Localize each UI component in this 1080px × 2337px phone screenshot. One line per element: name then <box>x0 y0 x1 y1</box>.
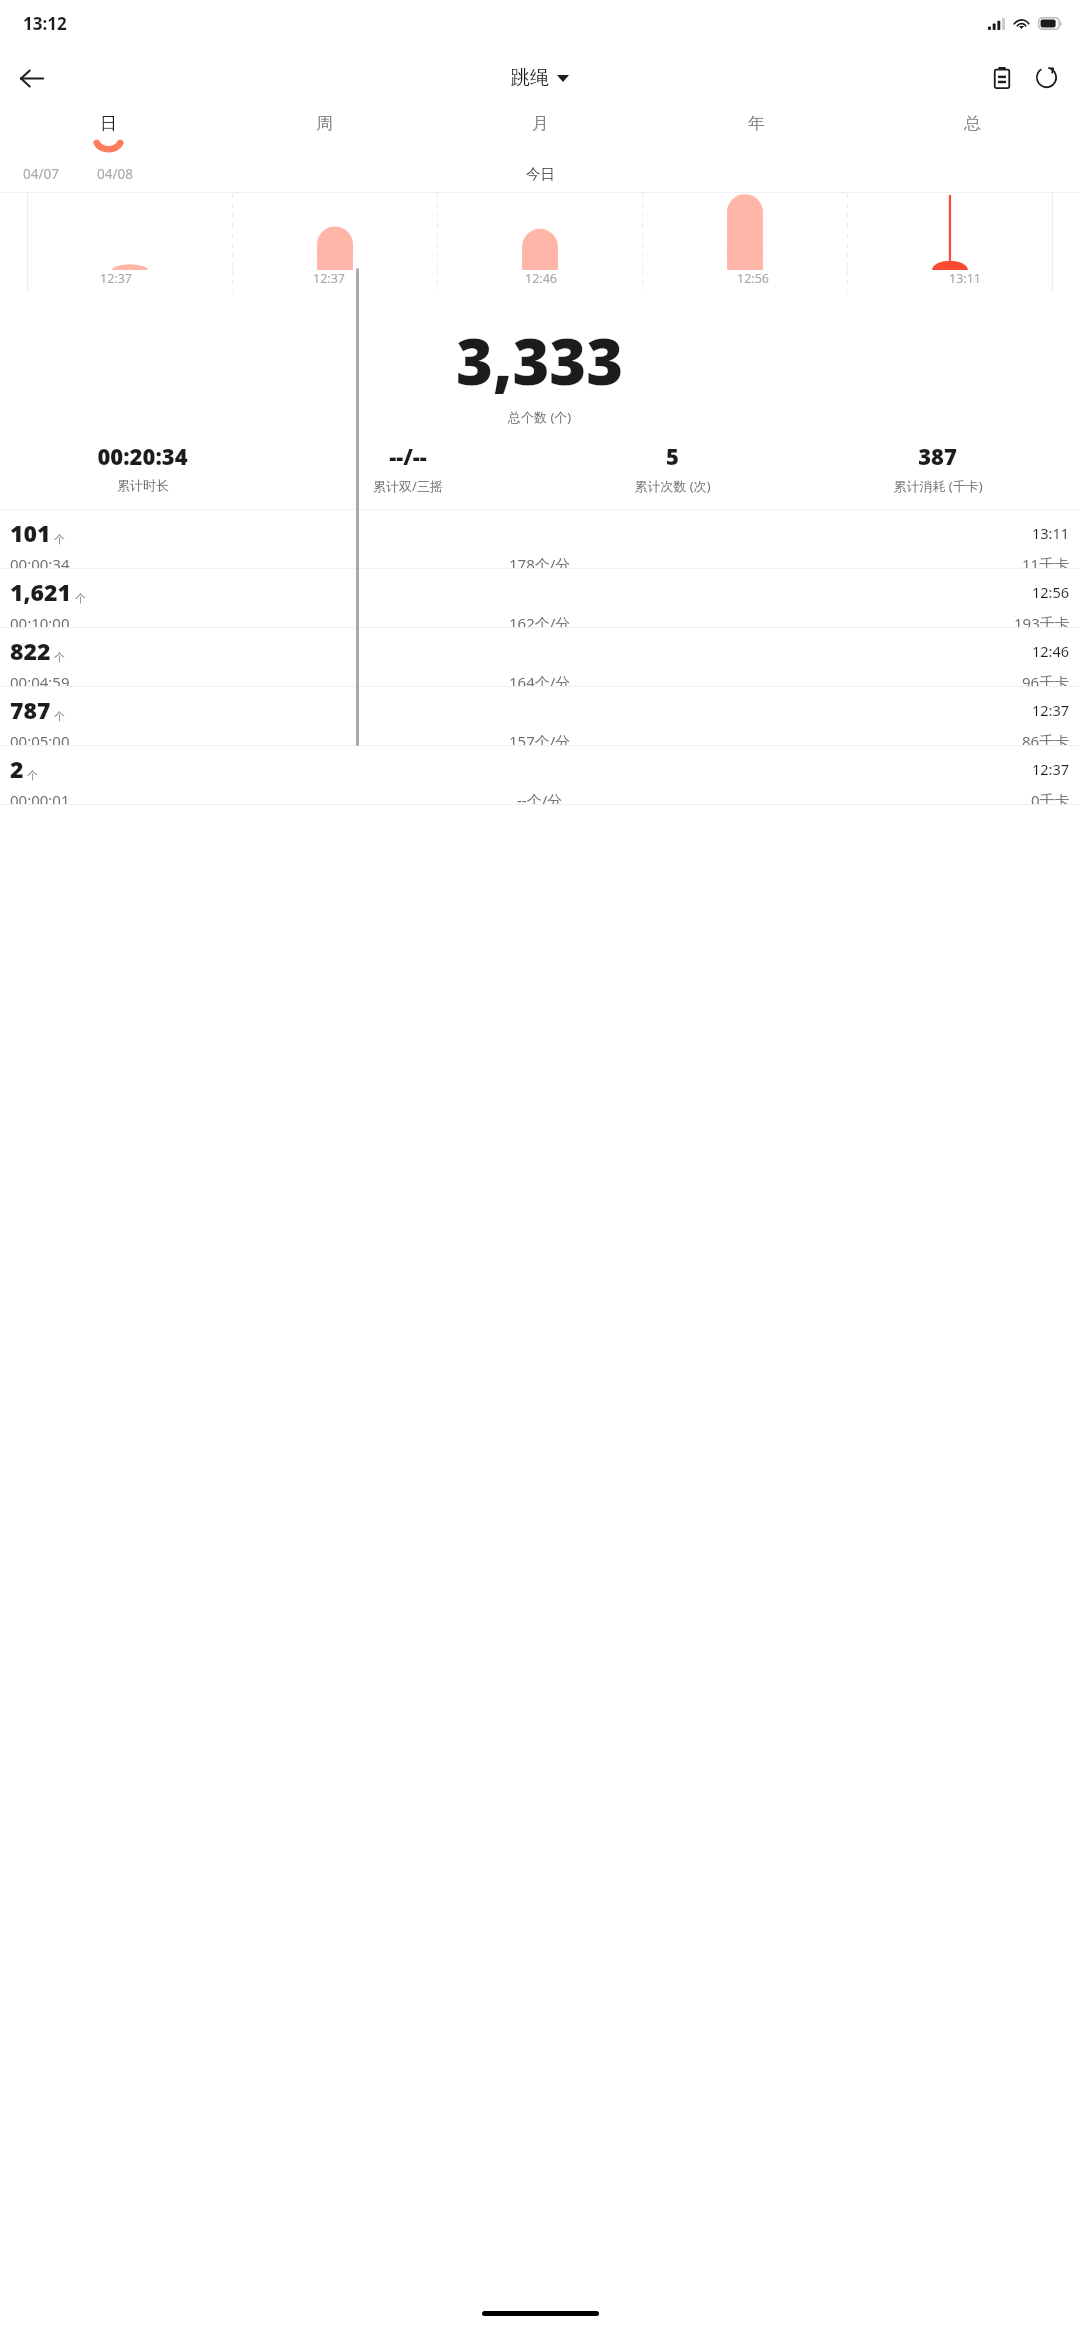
staticText: 年 <box>748 113 765 134</box>
staticText: 个 <box>54 650 65 664</box>
staticText: 00:10:00 <box>10 613 70 627</box>
button[interactable]: Refresh <box>1024 55 1069 100</box>
staticText: 1,621 <box>10 576 72 607</box>
staticText: 101 <box>10 517 51 548</box>
staticText: --/-- <box>389 441 427 471</box>
staticText: 今日 <box>526 165 555 183</box>
staticText: 157个/分 <box>509 731 571 745</box>
button[interactable]: 5 <box>540 441 805 495</box>
staticText: 3,333 <box>456 318 624 404</box>
button[interactable]: --/-- <box>275 441 540 495</box>
staticText: 12:56 <box>1032 582 1070 602</box>
staticText: 00:00:01 <box>10 790 70 804</box>
staticText: 04/08 <box>97 165 133 183</box>
staticText: 个 <box>75 591 86 605</box>
staticText: 周 <box>316 113 333 134</box>
staticText: 12:46 <box>525 270 557 287</box>
staticText: 11千卡 <box>1022 554 1070 568</box>
staticText: 累计双/三摇 <box>373 477 443 495</box>
staticText: 个 <box>27 768 38 782</box>
staticText: 162个/分 <box>509 613 571 627</box>
button[interactable]: Back <box>7 54 55 102</box>
staticText: 00:05:00 <box>10 731 70 745</box>
button[interactable]: 787 <box>0 687 1080 745</box>
staticText: 04/07 <box>23 165 59 183</box>
staticText: 12:37 <box>1032 700 1070 720</box>
button[interactable]: 周 <box>216 109 432 156</box>
staticText: 个 <box>54 532 65 546</box>
staticText: 12:56 <box>737 270 769 287</box>
staticText: 164个/分 <box>509 672 571 686</box>
staticText: 总 <box>964 113 981 134</box>
staticText: 0千卡 <box>1031 790 1070 804</box>
staticText: 12:37 <box>100 270 132 287</box>
staticText: 5 <box>666 441 679 471</box>
staticText: 13:11 <box>1032 523 1070 543</box>
staticText: 12:37 <box>313 270 345 287</box>
staticText: 累计消耗 (千卡) <box>893 477 983 495</box>
staticText: 跳绳 <box>511 66 549 90</box>
staticText: 12:46 <box>1032 641 1070 661</box>
button[interactable]: 跳绳 <box>505 62 575 94</box>
button[interactable]: 日 <box>0 109 216 156</box>
staticText: 累计时长 <box>117 477 169 493</box>
button[interactable]: 总 <box>864 109 1080 156</box>
staticText: 178个/分 <box>509 554 571 568</box>
staticText: --个/分 <box>517 790 563 804</box>
staticText: 累计次数 (次) <box>634 477 711 495</box>
staticText: 13:11 <box>949 270 981 287</box>
button[interactable]: 1,621 <box>0 569 1080 627</box>
staticText: 787 <box>10 694 51 725</box>
staticText: 月 <box>532 113 549 134</box>
staticText: 96千卡 <box>1022 672 1070 686</box>
button[interactable]: 00:20:34 <box>10 441 275 493</box>
button[interactable]: 年 <box>648 109 864 156</box>
staticText: 00:04:59 <box>10 672 70 686</box>
button[interactable]: 387 <box>805 441 1070 495</box>
staticText: 00:00:34 <box>10 554 70 568</box>
staticText: 日 <box>100 113 117 134</box>
button[interactable]: Records <box>979 55 1024 100</box>
staticText: 193千卡 <box>1014 613 1070 627</box>
button[interactable]: 101 <box>0 510 1080 568</box>
staticText: 13:12 <box>23 12 67 35</box>
staticText: 86千卡 <box>1022 731 1070 745</box>
staticText: 2 <box>10 753 24 784</box>
staticText: 387 <box>918 441 957 471</box>
staticText: 12:37 <box>1032 759 1070 779</box>
staticText: 个 <box>54 709 65 723</box>
staticText: 总个数 (个) <box>508 408 572 426</box>
staticText: 822 <box>10 635 51 666</box>
button[interactable]: 822 <box>0 628 1080 686</box>
button[interactable]: 月 <box>432 109 648 156</box>
button[interactable]: 2 <box>0 746 1080 804</box>
staticText: 00:20:34 <box>97 441 188 471</box>
